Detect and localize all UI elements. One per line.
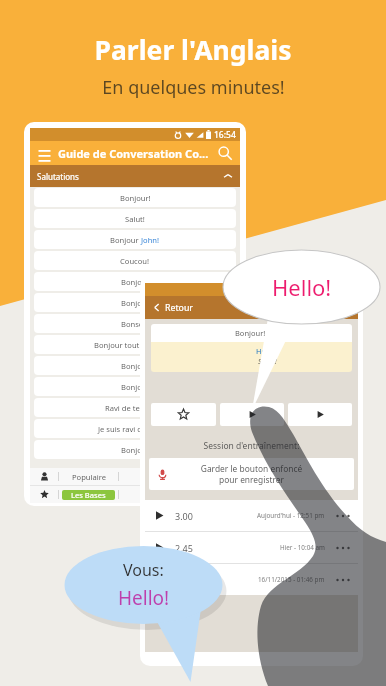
staticText: 3.00 — [175, 510, 193, 522]
staticText: Bonjour — [110, 235, 141, 245]
staticText: Mots — [140, 472, 158, 482]
staticText: Populaire — [72, 472, 106, 482]
button[interactable]: Search — [217, 145, 233, 161]
staticText: John! — [141, 235, 160, 245]
button[interactable]: Les Bases — [59, 486, 118, 503]
staticText: 16/11/2015 - 01:46 pm — [258, 575, 325, 584]
staticText: Hello! — [272, 272, 332, 302]
button[interactable]: Bonjour — [34, 356, 236, 375]
staticText: Hier - 10:04 am — [280, 543, 325, 552]
button[interactable]: Bonjour tout le monde! — [34, 335, 236, 354]
staticText: En quelques minutes! — [102, 75, 285, 100]
staticText: Bonjour! — [235, 328, 266, 338]
staticText: Salut! — [258, 356, 277, 366]
button[interactable]: Mots — [119, 468, 179, 485]
staticText: Bonsoir — [121, 319, 149, 329]
button[interactable]: Profile — [30, 468, 58, 485]
button[interactable]: Bonjour — [34, 230, 236, 249]
button[interactable]: Phr — [180, 468, 240, 485]
staticText: 16:54 — [214, 129, 236, 141]
button[interactable]: 2.45 — [154, 532, 349, 563]
button[interactable]: Bonjour — [34, 377, 236, 396]
staticText: Répo — [140, 490, 159, 500]
button[interactable]: Populaire — [59, 468, 118, 485]
button[interactable]: Bonjour! — [34, 188, 236, 207]
staticText: Hello! — [118, 585, 170, 611]
button[interactable]: Retour — [152, 296, 351, 319]
staticText: Garder le bouton enfoncé pour enregistre… — [168, 463, 335, 485]
staticText: Bonjour — [121, 277, 150, 287]
staticText: Salutations — [37, 171, 223, 182]
button[interactable]: Bonjour — [34, 272, 236, 291]
button[interactable]: Favourites — [30, 486, 58, 503]
staticText: Parler l'Anglais — [94, 32, 292, 68]
button[interactable]: Sal — [180, 486, 240, 503]
button[interactable]: Play slow — [220, 403, 284, 426]
staticText: Bonjour — [121, 361, 150, 371]
button[interactable]: Play — [288, 403, 352, 426]
button[interactable]: Menu — [37, 146, 52, 161]
staticText: Aujourd'hui - 12:51 pm — [257, 511, 325, 520]
staticText: Session d'entraînement: — [145, 440, 358, 452]
staticText: Les Bases — [71, 490, 106, 500]
staticText: Guide de Conversation Co... — [58, 146, 214, 161]
staticText: Bonjour! — [120, 193, 151, 203]
button[interactable]: Répo — [119, 486, 179, 503]
staticText: Vous: — [123, 559, 164, 581]
button[interactable]: Favourite — [151, 403, 216, 426]
staticText: Je suis ravi de te voir! — [98, 424, 173, 434]
staticText: Hello! — [256, 346, 277, 356]
staticText: Bonjour — [121, 445, 150, 455]
staticText: Bonjour tout le monde! — [94, 340, 177, 350]
button[interactable]: Bonjour — [34, 440, 236, 459]
button[interactable]: Salut! — [34, 209, 236, 228]
staticText: Coucou! — [120, 256, 150, 266]
button[interactable]: Je suis ravi de te voir! — [34, 419, 236, 438]
staticText: Bonjour — [121, 298, 150, 308]
button[interactable]: Garder le bouton enfoncé pour enregistre… — [149, 458, 354, 490]
button[interactable]: 16/11/2015 - 01:46 pm — [154, 564, 349, 595]
button[interactable]: Salutations — [37, 165, 233, 187]
button[interactable]: Bonsoir — [34, 314, 236, 333]
button[interactable]: Bonjour — [34, 293, 236, 312]
staticText: 2.45 — [175, 542, 193, 554]
staticText: Ravi de te revoir! — [105, 403, 165, 413]
staticText: Bonjour — [121, 382, 150, 392]
button[interactable]: Coucou! — [34, 251, 236, 270]
staticText: Retour — [165, 302, 194, 314]
button[interactable]: 3.00 — [154, 500, 349, 531]
button[interactable]: Ravi de te revoir! — [34, 398, 236, 417]
staticText: Salut! — [125, 214, 145, 224]
